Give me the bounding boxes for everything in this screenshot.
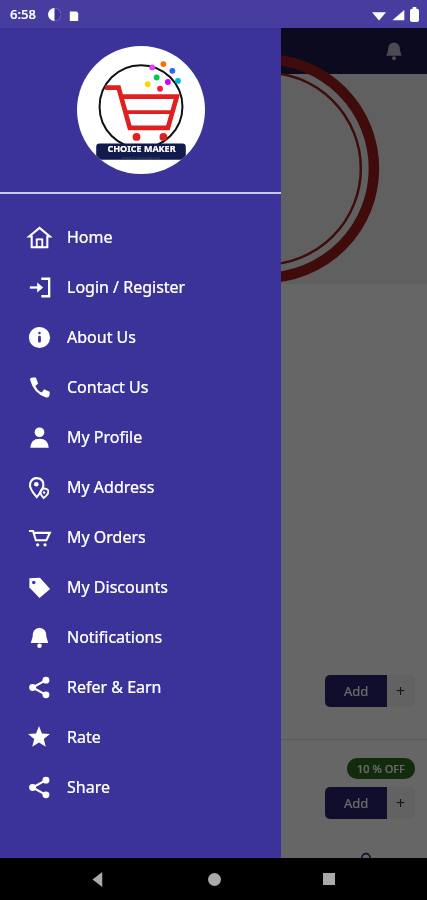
button[interactable]: Rate <box>0 712 281 762</box>
staticText: SALE <box>118 137 269 221</box>
staticText: My Profile <box>67 426 143 448</box>
staticText: + <box>396 792 406 814</box>
button[interactable]: Add <box>325 675 415 707</box>
button[interactable]: Recents <box>312 862 346 896</box>
staticText: Add <box>344 794 369 812</box>
button[interactable]: 0 <box>224 842 304 900</box>
button[interactable]: My Orders <box>0 512 281 562</box>
staticText: My Discounts <box>67 576 168 598</box>
staticText: Login / Register <box>67 276 186 298</box>
button[interactable]: Home <box>0 212 281 262</box>
button[interactable]: Login / Register <box>0 262 281 312</box>
staticText: Add <box>344 682 369 700</box>
staticText: Rate <box>67 726 101 748</box>
staticText: 6:58 <box>10 5 36 23</box>
staticText: ₹ 120 <box>94 791 128 809</box>
button[interactable]: About Us <box>0 312 281 362</box>
staticText: Refer & Earn <box>67 676 162 698</box>
staticText: + <box>396 680 406 702</box>
button[interactable]: Add <box>325 787 415 819</box>
button[interactable]: Home <box>197 862 231 896</box>
button[interactable]: My Profile <box>0 412 281 462</box>
staticText: Home <box>67 226 113 248</box>
staticText: Notifications <box>67 626 163 648</box>
button[interactable]: My Address <box>0 462 281 512</box>
staticText: www.choicemaker.in <box>122 155 161 160</box>
staticText: 0 <box>266 851 272 863</box>
button[interactable]: Notifications <box>377 34 411 68</box>
staticText: My Orders <box>67 526 146 548</box>
button[interactable]: Notifications <box>0 612 281 662</box>
button[interactable]: Home <box>21 842 101 900</box>
staticText: About Us <box>67 326 136 348</box>
button[interactable]: Account <box>326 842 406 900</box>
staticText: Contact Us <box>67 376 149 398</box>
staticText: Product name <box>94 768 187 787</box>
staticText: CHOICE MAKER <box>107 142 176 154</box>
staticText: Share <box>67 776 110 798</box>
button[interactable]: Back <box>81 862 115 896</box>
button[interactable]: Contact Us <box>0 362 281 412</box>
button[interactable]: Category <box>123 842 203 900</box>
button[interactable]: My Discounts <box>0 562 281 612</box>
staticText: Shop by Category <box>16 314 159 337</box>
staticText: My Address <box>67 476 155 498</box>
staticText: Product name <box>94 671 187 690</box>
button[interactable]: Refer & Earn <box>0 662 281 712</box>
button[interactable]: Share <box>0 762 281 812</box>
staticText: 10 % OFF <box>357 761 405 776</box>
